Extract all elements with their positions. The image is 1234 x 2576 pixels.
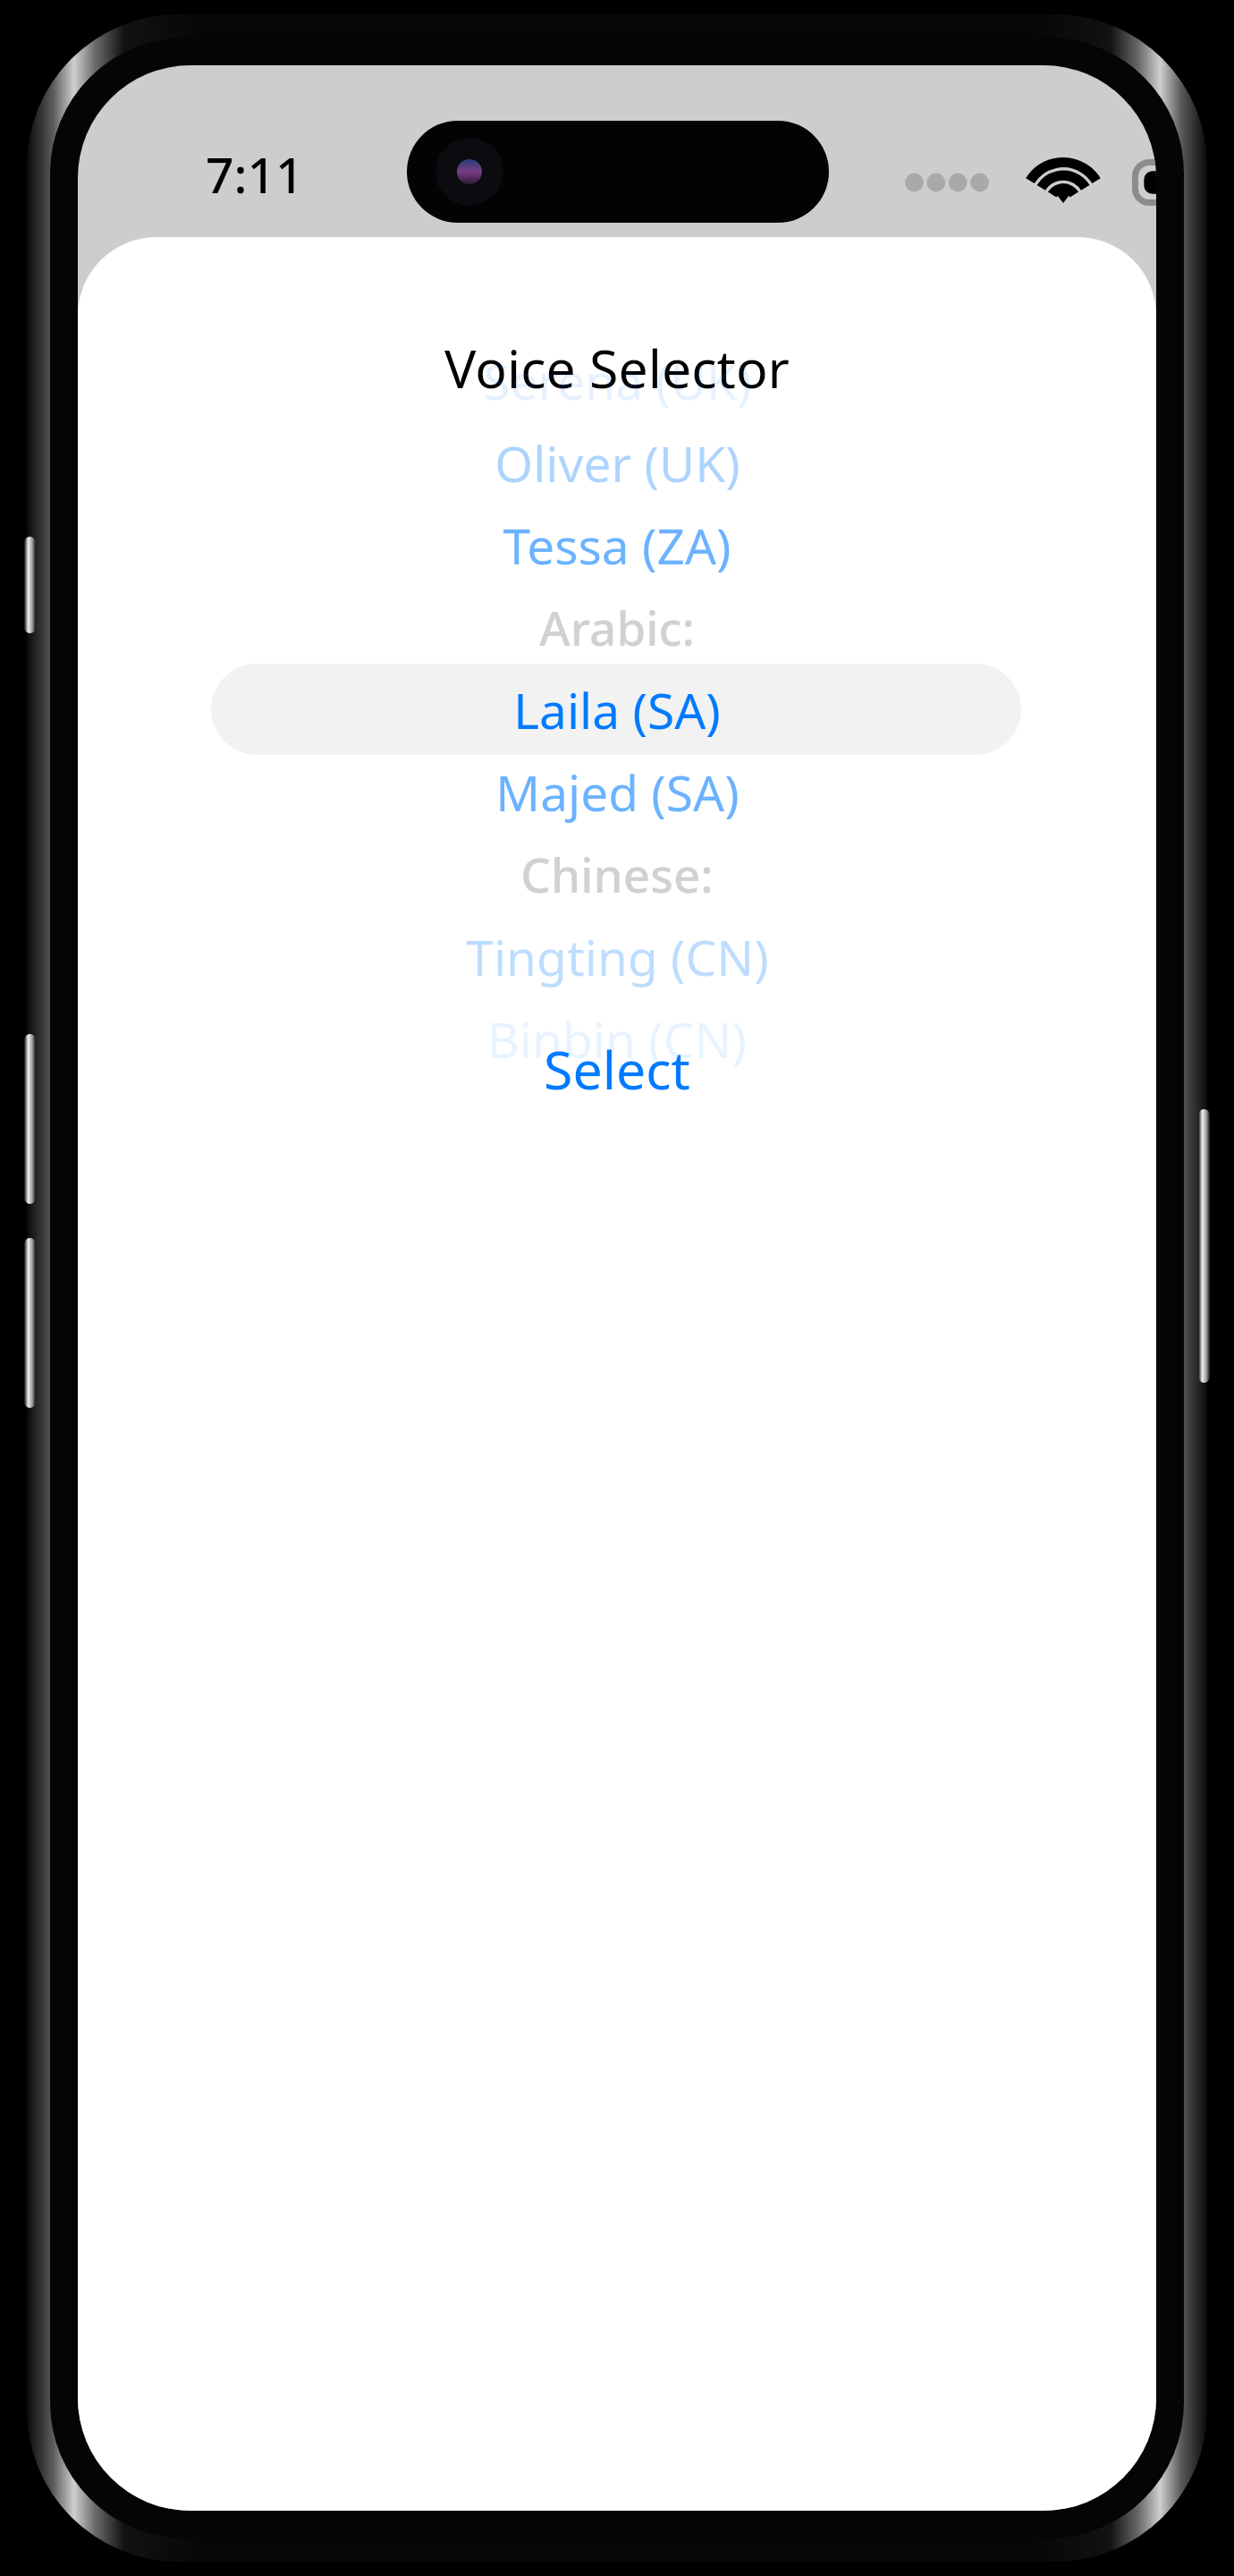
button[interactable]: Majed (SA) <box>78 758 1156 826</box>
staticText: Laila (SA) <box>513 676 721 743</box>
other: Cellular signal <box>905 171 989 194</box>
staticText: 7:11 <box>206 140 304 208</box>
staticText: Tessa (ZA) <box>503 512 731 579</box>
staticText: Select <box>544 1033 690 1105</box>
button[interactable]: Chinese: <box>78 840 1156 908</box>
staticText: Majed (SA) <box>495 758 740 826</box>
button[interactable]: Laila (SA) <box>78 675 1156 743</box>
button[interactable]: Oliver (UK) <box>78 428 1156 496</box>
staticText: Serena (UK) <box>483 347 752 414</box>
staticText: Voice Selector <box>444 332 790 403</box>
button[interactable]: Binbin (CN) <box>78 1004 1156 1072</box>
staticText: Binbin (CN) <box>487 1005 747 1072</box>
staticText: Oliver (UK) <box>494 429 740 496</box>
other: Wi-Fi <box>1028 157 1098 208</box>
button[interactable]: Tessa (ZA) <box>78 511 1156 579</box>
other: Battery full <box>1132 159 1156 206</box>
staticText: Arabic: <box>539 595 695 659</box>
button[interactable]: Tingting (CN) <box>78 922 1156 990</box>
button[interactable]: Serena (UK) <box>78 346 1156 414</box>
staticText: Chinese: <box>520 842 714 906</box>
button[interactable]: Arabic: <box>78 593 1156 661</box>
staticText: Tingting (CN) <box>466 923 769 990</box>
button[interactable]: Select <box>78 1031 1156 1106</box>
